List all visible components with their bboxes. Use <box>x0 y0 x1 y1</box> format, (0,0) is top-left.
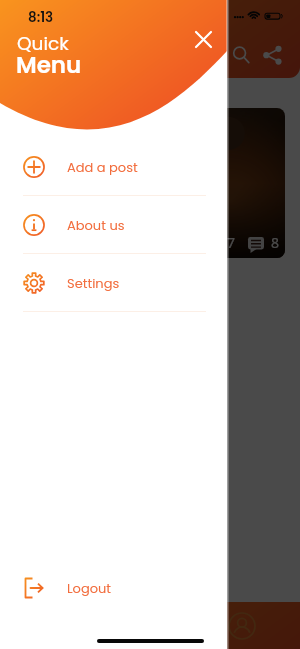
button[interactable]: Logout <box>0 559 227 617</box>
button[interactable]: Share <box>257 40 287 70</box>
staticText: About us <box>67 216 125 234</box>
button[interactable]: Settings <box>0 254 227 312</box>
staticText: 8:13 <box>28 8 54 27</box>
button[interactable]: Add a post <box>0 138 227 196</box>
staticText: 7 <box>227 233 236 252</box>
button[interactable]: 7 <box>15 108 285 258</box>
button[interactable]: About us <box>0 196 227 254</box>
button[interactable]: Close menu <box>187 23 220 56</box>
staticText: 8 <box>271 233 280 252</box>
staticText: Logout <box>67 579 112 597</box>
staticText: Settings <box>67 274 120 292</box>
staticText: Add a post <box>67 158 138 176</box>
button[interactable]: Profile <box>222 602 262 649</box>
button[interactable]: Search <box>226 40 256 70</box>
staticText: Quick <box>17 31 69 57</box>
staticText: Menu <box>16 49 82 81</box>
